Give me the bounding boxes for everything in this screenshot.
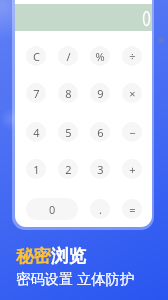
staticText: . bbox=[99, 202, 102, 217]
button[interactable]: 8 bbox=[58, 83, 78, 103]
staticText: / bbox=[66, 49, 71, 64]
button[interactable]: 7 bbox=[26, 83, 46, 103]
button[interactable]: ÷ bbox=[122, 46, 142, 66]
staticText: 密码设置 立体防护 bbox=[16, 269, 135, 289]
button[interactable]: 4 bbox=[26, 122, 46, 142]
staticText: 1 bbox=[33, 162, 40, 177]
button[interactable]: 0 bbox=[26, 198, 78, 220]
button[interactable]: C bbox=[26, 46, 46, 66]
staticText: 2 bbox=[65, 162, 72, 177]
button[interactable]: 1 bbox=[26, 159, 46, 179]
staticText: 秘密 bbox=[16, 245, 51, 267]
staticText: 8 bbox=[65, 86, 72, 101]
staticText: 5 bbox=[65, 125, 72, 140]
staticText: 6 bbox=[97, 125, 104, 140]
staticText: 4 bbox=[33, 125, 40, 140]
staticText: = bbox=[129, 202, 136, 217]
button[interactable]: / bbox=[58, 46, 78, 66]
button[interactable]: = bbox=[122, 199, 142, 219]
staticText: 9 bbox=[97, 86, 104, 101]
button[interactable]: × bbox=[122, 83, 142, 103]
button[interactable]: 5 bbox=[58, 122, 78, 142]
button[interactable]: − bbox=[122, 122, 142, 142]
button[interactable]: + bbox=[122, 159, 142, 179]
staticText: 7 bbox=[33, 86, 40, 101]
button[interactable]: 3 bbox=[90, 159, 110, 179]
staticText: 浏览 bbox=[51, 245, 86, 267]
staticText: 3 bbox=[97, 162, 104, 177]
staticText: ÷ bbox=[129, 49, 136, 64]
staticText: % bbox=[95, 49, 105, 64]
staticText: C bbox=[33, 49, 40, 64]
button[interactable]: . bbox=[90, 199, 110, 219]
button[interactable]: 2 bbox=[58, 159, 78, 179]
button[interactable]: 6 bbox=[90, 122, 110, 142]
staticText: 0 bbox=[49, 202, 56, 217]
staticText: + bbox=[129, 162, 136, 177]
staticText: × bbox=[129, 86, 136, 101]
staticText: − bbox=[129, 125, 136, 140]
button[interactable]: % bbox=[90, 46, 110, 66]
button[interactable]: 9 bbox=[90, 83, 110, 103]
